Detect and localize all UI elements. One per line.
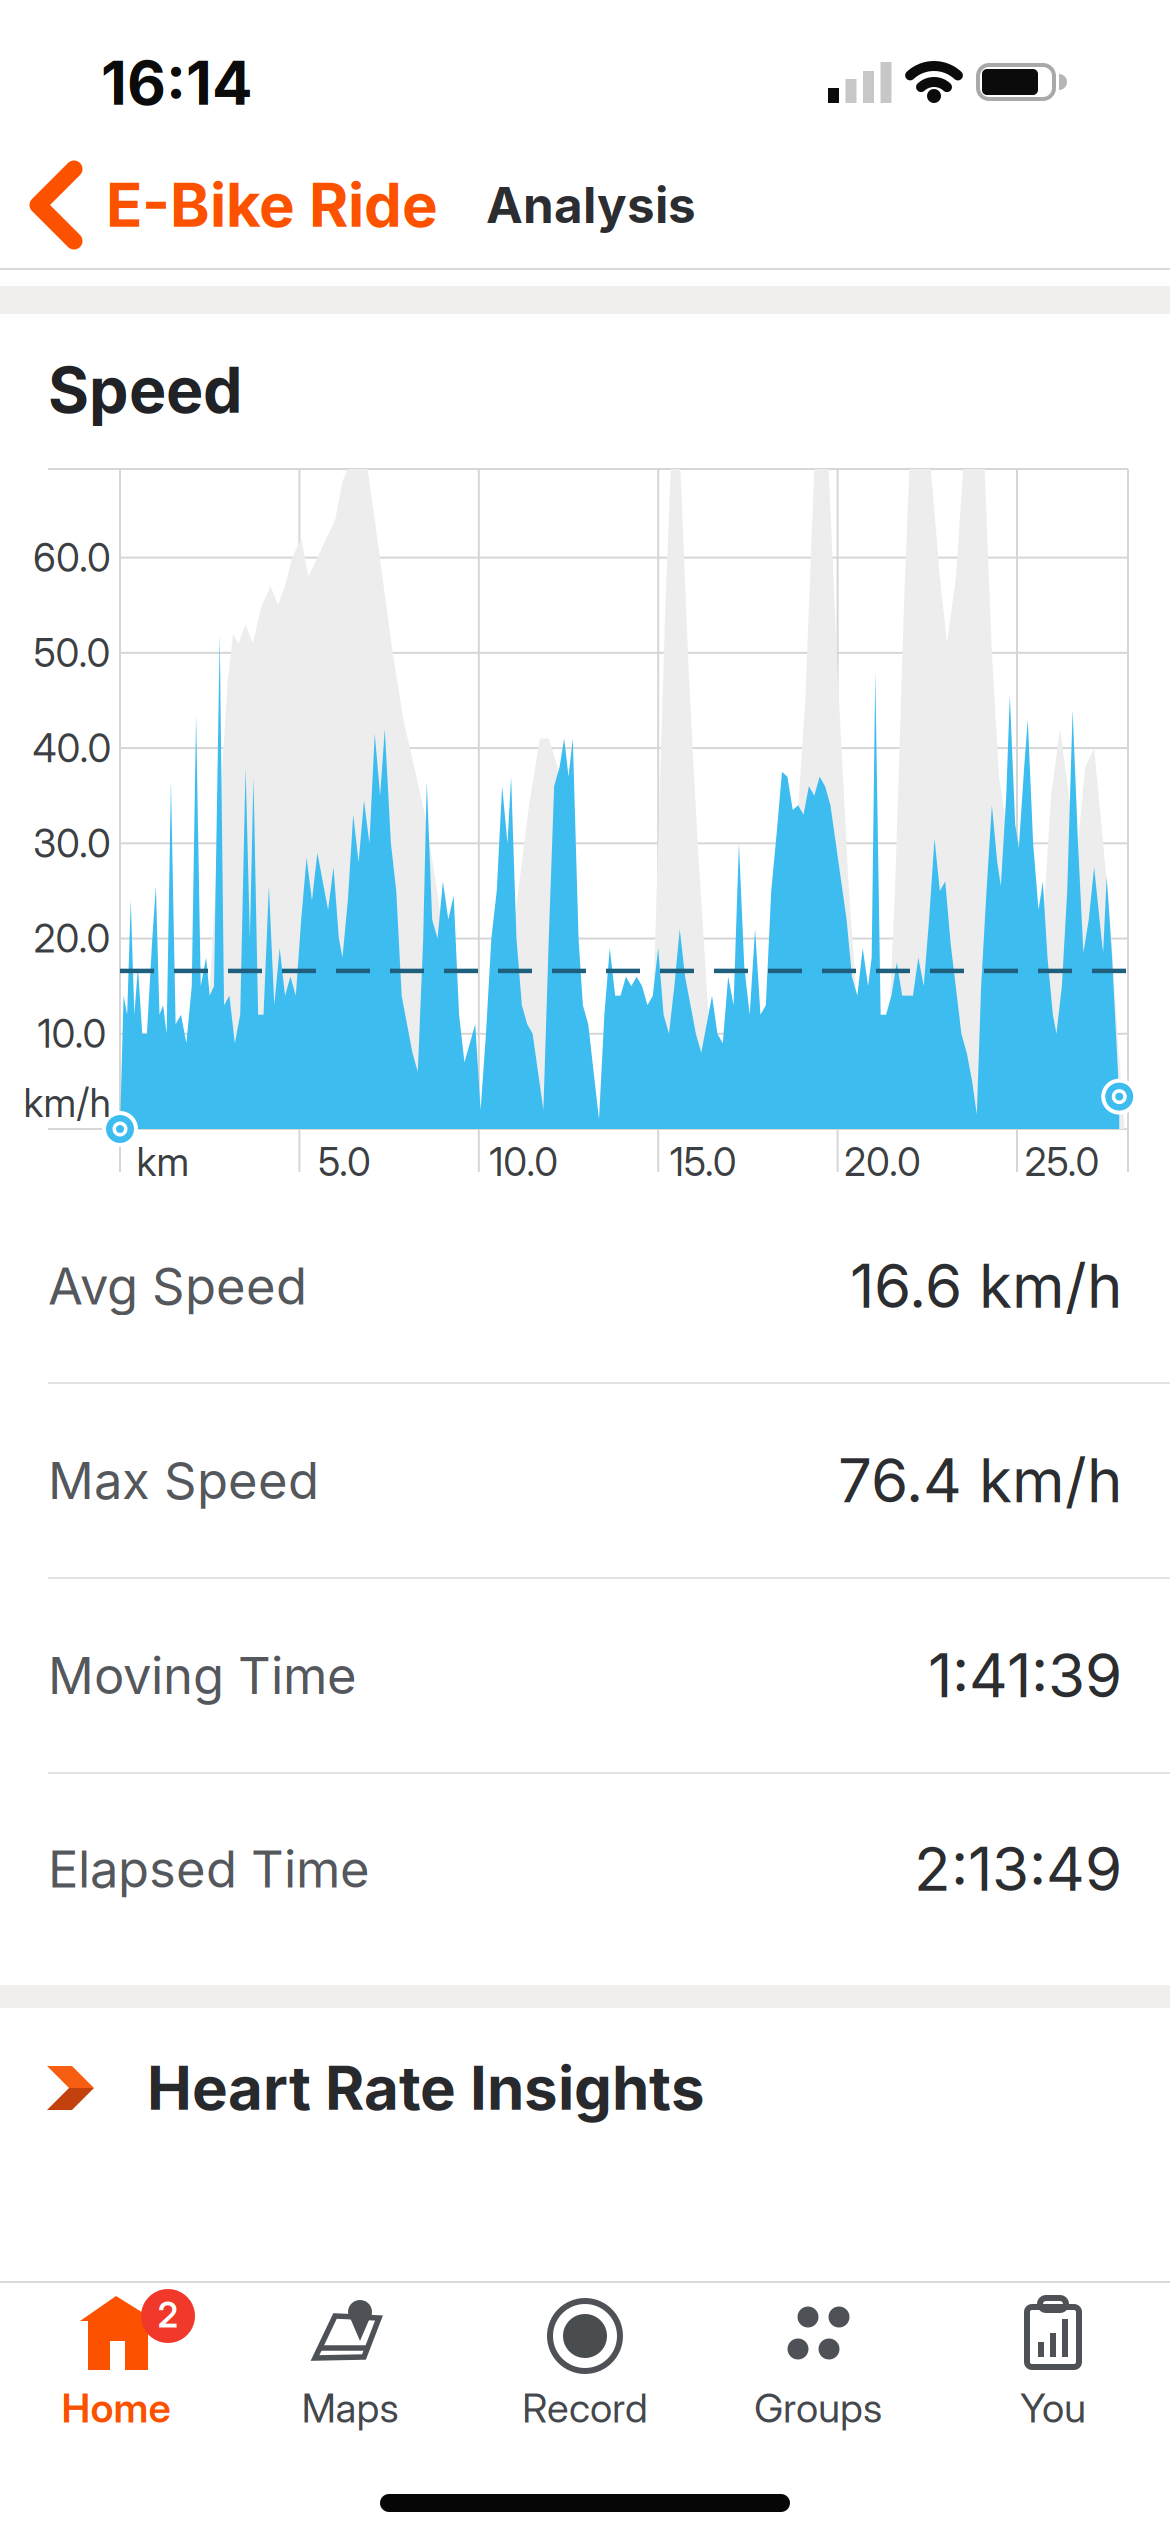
staticText: Avg Speed [48, 1256, 307, 1316]
button[interactable]: Back [28, 163, 84, 247]
staticText: 30.0 [33, 820, 111, 866]
button[interactable]: E-Bike Ride [106, 170, 438, 240]
staticText: Moving Time [48, 1646, 357, 1705]
staticText: 10.0 [489, 1139, 558, 1185]
button[interactable]: Heart Rate Insights [0, 2028, 1170, 2148]
staticText: 2 [157, 2295, 178, 2335]
staticText: Maps [301, 2384, 398, 2432]
button[interactable]: Maps [233, 2283, 467, 2463]
staticText: 10.0 [37, 1011, 106, 1057]
staticText: Speed [48, 353, 243, 427]
staticText: 50.0 [33, 630, 110, 676]
staticText: km [136, 1139, 189, 1185]
staticText: Record [522, 2384, 648, 2432]
staticText: 40.0 [32, 725, 111, 771]
staticText: Groups [754, 2384, 882, 2432]
staticText: 2:13:49 [914, 1834, 1122, 1904]
staticText: Heart Rate Insights [147, 2053, 705, 2123]
staticText: 5.0 [318, 1139, 371, 1185]
staticText: You [1020, 2384, 1086, 2432]
staticText: Analysis [486, 176, 696, 234]
staticText: 16.6 km/h [850, 1251, 1122, 1321]
staticText: 25.0 [1024, 1139, 1099, 1185]
staticText: E-Bike Ride [106, 170, 438, 240]
staticText: 16:14 [101, 48, 253, 118]
staticText: 76.4 km/h [838, 1445, 1122, 1516]
staticText: km/h [23, 1080, 110, 1126]
staticText: 20.0 [33, 916, 110, 961]
button[interactable]: Record [468, 2283, 702, 2463]
staticText: Max Speed [48, 1451, 319, 1510]
staticText: 20.0 [844, 1139, 921, 1185]
button[interactable]: Groups [701, 2283, 935, 2463]
button[interactable]: 2 [0, 2283, 233, 2463]
staticText: Home [61, 2384, 170, 2432]
staticText: 60.0 [33, 535, 111, 580]
staticText: Elapsed Time [48, 1839, 370, 1899]
staticText: 15.0 [670, 1139, 737, 1185]
staticText: 1:41:39 [928, 1640, 1122, 1711]
button[interactable]: You [936, 2283, 1170, 2463]
